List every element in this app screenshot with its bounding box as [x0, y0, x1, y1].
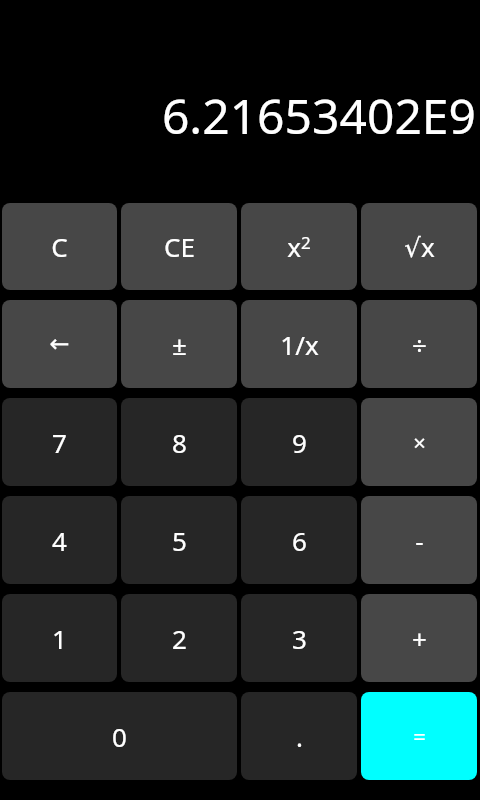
button[interactable]: 3 — [241, 594, 357, 682]
staticText: 0 — [112, 719, 127, 754]
button[interactable]: Divide — [361, 300, 477, 388]
staticText: = — [413, 721, 426, 751]
staticText: 5 — [172, 523, 187, 558]
button[interactable]: 5 — [121, 496, 237, 584]
button[interactable]: 9 — [241, 398, 357, 486]
button[interactable]: 6 — [241, 496, 357, 584]
staticText: 3 — [292, 621, 307, 656]
button[interactable]: 1/x — [241, 300, 357, 388]
staticText: 8 — [172, 425, 187, 460]
button[interactable]: Backspace — [2, 300, 117, 388]
staticText: ← — [49, 330, 70, 358]
staticText: 1 — [52, 621, 67, 656]
staticText: C — [51, 229, 68, 264]
button[interactable]: √x — [361, 203, 477, 290]
button[interactable]: x squared — [241, 203, 357, 290]
staticText: 6.21653402E9 — [161, 83, 476, 148]
staticText: 6 — [292, 523, 307, 558]
staticText: ÷ — [412, 327, 427, 362]
staticText: × — [413, 427, 426, 457]
button[interactable]: 0 — [2, 692, 237, 780]
button[interactable]: Plus — [361, 594, 477, 682]
button[interactable]: 8 — [121, 398, 237, 486]
button[interactable]: Minus — [361, 496, 477, 584]
staticText: ± — [172, 327, 187, 362]
staticText: 2 — [172, 621, 187, 656]
button[interactable]: 1 — [2, 594, 117, 682]
button[interactable]: Decimal point — [241, 692, 357, 780]
staticText: 4 — [52, 523, 67, 558]
button[interactable]: 4 — [2, 496, 117, 584]
staticText: 1/x — [280, 327, 319, 362]
button[interactable]: 7 — [2, 398, 117, 486]
button[interactable]: Plus minus — [121, 300, 237, 388]
staticText: x2 — [287, 229, 311, 264]
button[interactable]: Equals — [361, 692, 477, 780]
staticText: - — [415, 523, 424, 558]
staticText: 9 — [292, 425, 307, 460]
staticText: √x — [404, 229, 435, 264]
staticText: CE — [164, 229, 195, 264]
button[interactable]: Multiply — [361, 398, 477, 486]
staticText: . — [296, 719, 303, 754]
button[interactable]: 2 — [121, 594, 237, 682]
staticText: + — [412, 621, 427, 656]
button[interactable]: C — [2, 203, 117, 290]
button[interactable]: CE — [121, 203, 237, 290]
staticText: 7 — [52, 425, 67, 460]
